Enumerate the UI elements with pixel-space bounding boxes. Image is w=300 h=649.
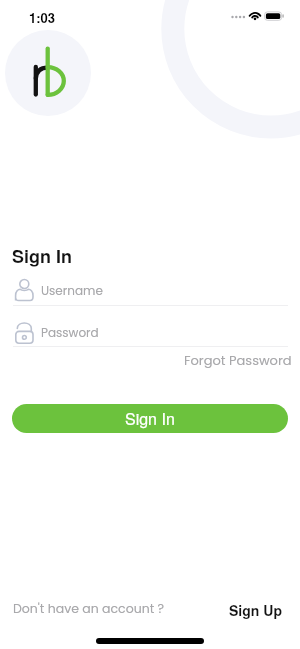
button[interactable]: Username: [0, 276, 300, 306]
staticText: Sign In: [125, 407, 175, 430]
staticText: 1:03: [29, 8, 56, 27]
button[interactable]: Password: [0, 318, 300, 346]
staticText: Sign In: [12, 243, 73, 269]
button[interactable]: Sign In: [12, 404, 288, 433]
button[interactable]: Sign Up: [229, 600, 282, 620]
button[interactable]: Forgot Password: [184, 351, 292, 369]
staticText: Don't have an account ?: [13, 600, 165, 617]
staticText: Password: [41, 324, 99, 341]
staticText: Username: [41, 282, 103, 299]
